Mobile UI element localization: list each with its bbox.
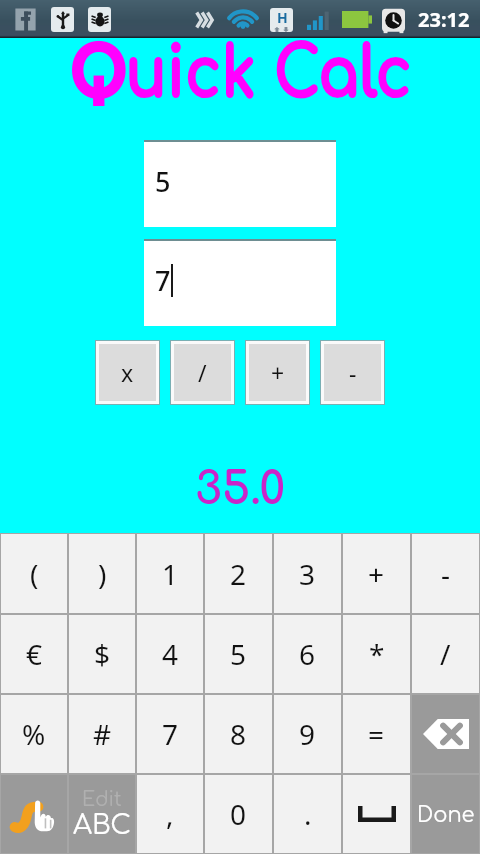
button[interactable]: - — [412, 534, 479, 613]
staticText: 2 — [230, 555, 247, 593]
button[interactable]: Done — [412, 775, 479, 853]
staticText: = — [368, 715, 385, 753]
staticText: 9 — [299, 715, 316, 753]
button[interactable]: 8 — [205, 695, 272, 773]
staticText: 3 — [299, 555, 316, 593]
button[interactable]: # — [69, 695, 135, 773]
staticText: % — [22, 715, 46, 753]
button[interactable]: 6 — [274, 615, 341, 693]
button[interactable]: Space — [343, 775, 410, 853]
staticText: , — [166, 795, 174, 833]
staticText: + — [368, 555, 385, 593]
button[interactable]: x — [99, 344, 156, 401]
staticText: 35.0 — [195, 464, 286, 514]
staticText: - — [441, 555, 451, 593]
button[interactable]: 7 — [144, 239, 336, 326]
other: Gesture input — [12, 796, 56, 832]
button[interactable]: = — [343, 695, 410, 773]
staticText: / — [198, 357, 207, 388]
button[interactable]: $ — [69, 615, 135, 693]
staticText: 7 — [162, 715, 179, 753]
staticText: 8 — [230, 715, 247, 753]
staticText: ) — [98, 555, 107, 593]
staticText: uick Calc — [125, 35, 413, 113]
other: Space — [358, 806, 396, 822]
staticText: 1 — [162, 555, 179, 593]
button[interactable]: 7 — [137, 695, 203, 773]
button[interactable]: - — [324, 344, 381, 401]
button[interactable]: Gesture input — [1, 775, 67, 853]
button[interactable]: ( — [1, 534, 67, 613]
staticText: H — [277, 8, 288, 27]
button[interactable]: / — [174, 344, 231, 401]
button[interactable]: 4 — [137, 615, 203, 693]
staticText: - — [349, 357, 357, 388]
button[interactable]: 5 — [205, 615, 272, 693]
staticText: 23:12 — [418, 6, 470, 33]
button[interactable]: € — [1, 615, 67, 693]
other: Backspace — [423, 719, 469, 749]
staticText: 5 — [230, 635, 247, 673]
staticText: # — [93, 715, 112, 753]
button[interactable]: . — [274, 775, 341, 853]
button[interactable]: 3 — [274, 534, 341, 613]
staticText: 7 — [155, 262, 171, 299]
button[interactable]: * — [343, 615, 410, 693]
staticText: € — [26, 635, 43, 673]
staticText: Done — [417, 803, 475, 826]
staticText: ABC — [73, 810, 131, 840]
staticText: 4 — [162, 635, 179, 673]
staticText: ( — [30, 555, 39, 593]
button[interactable]: ) — [69, 534, 135, 613]
staticText: . — [304, 795, 312, 833]
staticText: $ — [94, 635, 111, 673]
button[interactable]: Backspace — [412, 695, 479, 773]
staticText: x — [121, 357, 134, 388]
staticText: Q — [69, 20, 129, 106]
staticText: * — [369, 635, 385, 673]
staticText: 0 — [230, 795, 247, 833]
button[interactable]: 0 — [205, 775, 272, 853]
button[interactable]: % — [1, 695, 67, 773]
button[interactable]: 9 — [274, 695, 341, 773]
staticText: / — [440, 635, 451, 673]
button[interactable]: , — [137, 775, 203, 853]
staticText: + — [271, 357, 285, 388]
button[interactable]: Edit — [69, 775, 135, 853]
staticText: 6 — [299, 635, 316, 673]
button[interactable]: + — [343, 534, 410, 613]
button[interactable]: 2 — [205, 534, 272, 613]
button[interactable]: 1 — [137, 534, 203, 613]
staticText: Edit — [82, 789, 122, 810]
button[interactable]: 5 — [144, 140, 336, 227]
staticText: 5 — [155, 163, 171, 200]
button[interactable]: / — [412, 615, 479, 693]
button[interactable]: + — [249, 344, 306, 401]
